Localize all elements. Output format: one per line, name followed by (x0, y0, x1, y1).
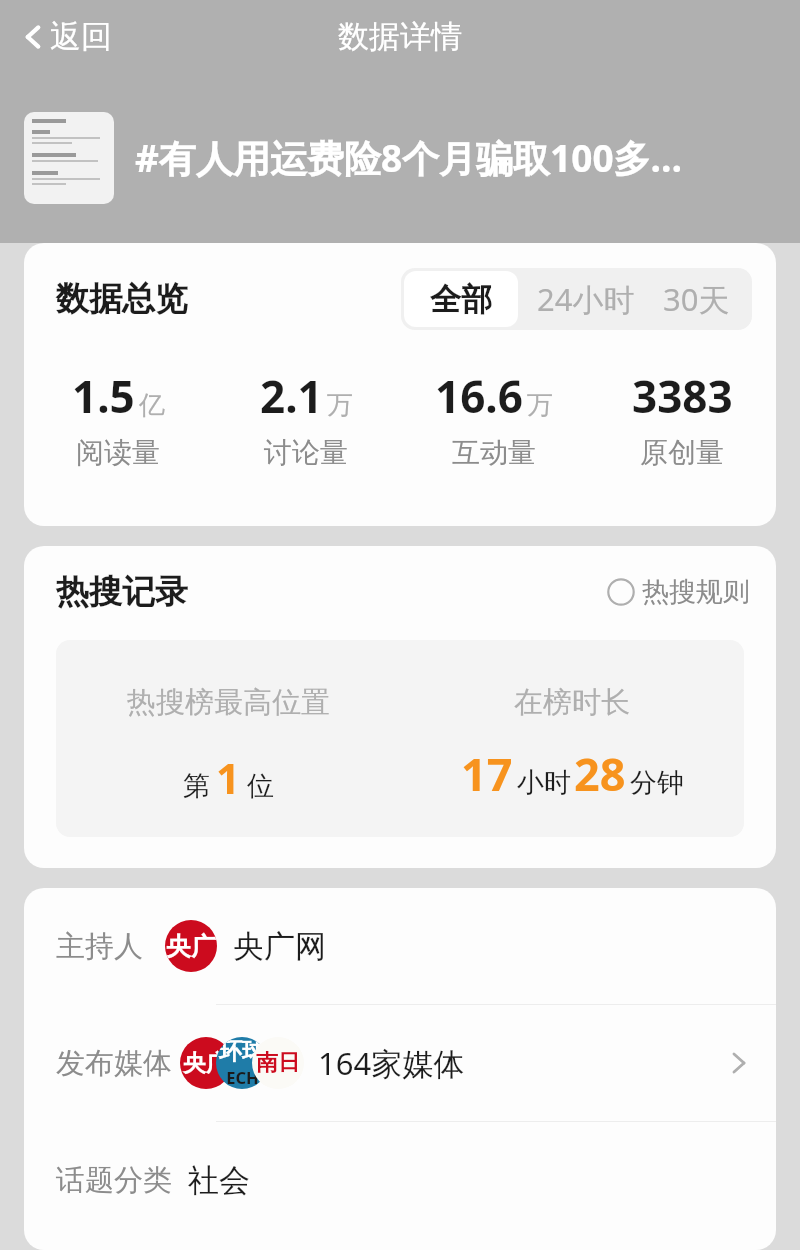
staticText: 小时 (517, 766, 571, 800)
staticText: 3383 (632, 366, 733, 426)
staticText: 数据详情 (338, 17, 462, 56)
staticText: 发布媒体 (56, 1045, 172, 1082)
staticText: 1 (216, 749, 241, 806)
button[interactable]: 2.1 (212, 366, 400, 470)
staticText: 28 (574, 743, 626, 804)
button[interactable]: 话题图片 (24, 112, 114, 204)
staticText: 24小时 (537, 278, 635, 320)
button[interactable]: 返回 (16, 11, 118, 62)
staticText: 164家媒体 (318, 1042, 465, 1084)
staticText: 分钟 (630, 766, 684, 800)
staticText: 数据总览 (56, 278, 188, 320)
button[interactable]: 主持人 (24, 888, 776, 1004)
staticText: ECH (226, 1066, 259, 1089)
staticText: 位 (247, 769, 274, 803)
button[interactable]: 热搜规则 (603, 571, 754, 613)
staticText: 讨论量 (264, 435, 348, 470)
staticText: 热搜记录 (56, 571, 188, 613)
staticText: 第 (183, 769, 210, 803)
staticText: 南日报 (252, 1049, 304, 1077)
staticText: 万 (327, 389, 353, 422)
staticText: 返回 (50, 17, 112, 56)
staticText: 2.1 (260, 366, 323, 426)
staticText: 主持人 (56, 928, 143, 965)
button[interactable]: 1.5 (24, 366, 212, 470)
staticText: 亿 (139, 389, 165, 422)
staticText: 原创量 (640, 435, 724, 470)
staticText: 阅读量 (76, 435, 160, 470)
button[interactable]: 发布媒体 (24, 1005, 776, 1121)
staticText: 万 (527, 389, 553, 422)
staticText: 17 (461, 743, 513, 804)
button[interactable]: 话题分类 (24, 1122, 776, 1238)
staticText: 互动量 (452, 435, 536, 470)
button[interactable]: 30天 (651, 268, 752, 330)
button[interactable]: 3383 (588, 366, 776, 470)
button[interactable]: 24小时 (521, 268, 651, 330)
staticText: 央广网 (165, 931, 217, 962)
staticText: 热搜榜最高位置 (127, 684, 330, 721)
button[interactable]: 全部 (404, 271, 518, 327)
staticText: 社会 (188, 1161, 250, 1200)
staticText: 热搜规则 (642, 575, 750, 609)
staticText: 央广网 (180, 1049, 232, 1078)
button[interactable]: 16.6 (400, 366, 588, 470)
staticText: 话题分类 (56, 1162, 172, 1199)
staticText: 在榜时长 (514, 684, 630, 721)
staticText: 1.5 (72, 366, 135, 426)
staticText: 全部 (430, 280, 492, 319)
staticText: 央广网 (233, 927, 326, 966)
staticText: 环球 (219, 1037, 265, 1066)
staticText: #有人用运费险8个月骗取100多… (135, 132, 683, 183)
staticText: 16.6 (435, 366, 523, 426)
staticText: 30天 (663, 278, 730, 320)
